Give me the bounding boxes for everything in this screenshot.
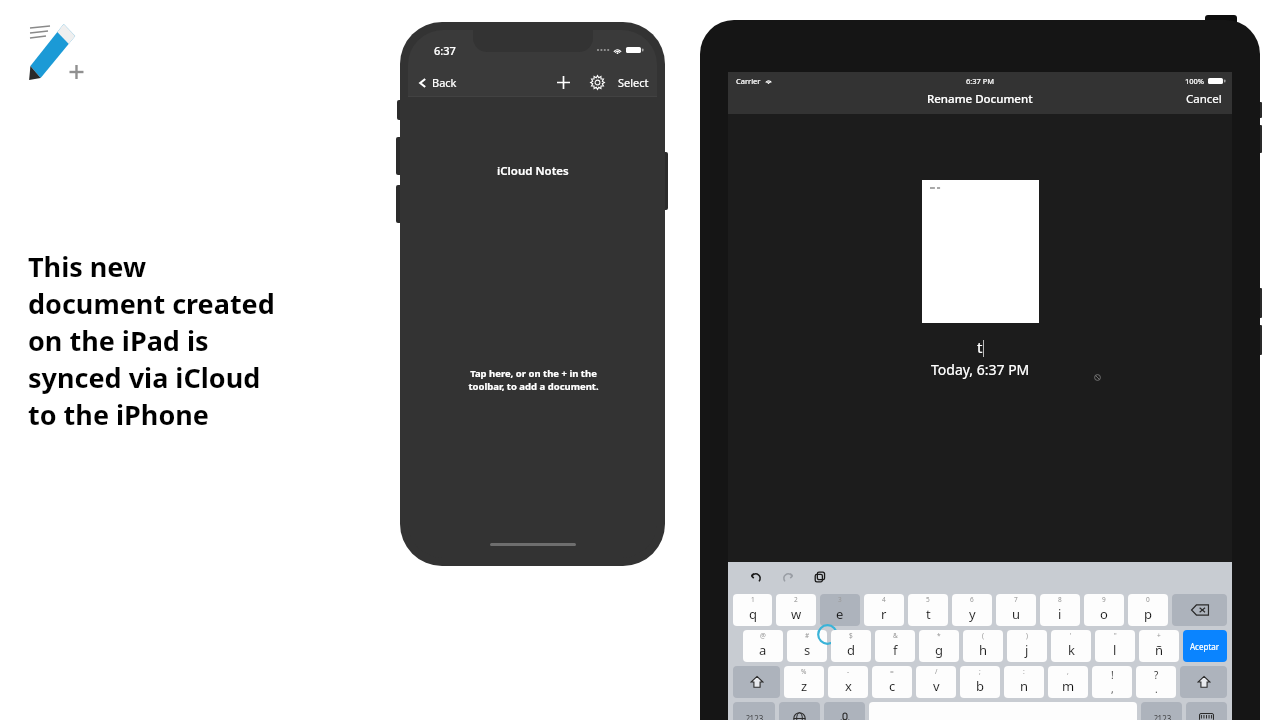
staticText: .?123 bbox=[1152, 713, 1172, 720]
staticText: u bbox=[1012, 605, 1021, 623]
button[interactable] bbox=[1186, 702, 1227, 720]
staticText: % bbox=[801, 667, 807, 676]
button[interactable]: 9 bbox=[1084, 594, 1124, 626]
button[interactable]: $ bbox=[831, 630, 871, 662]
button[interactable]: ' bbox=[1051, 630, 1091, 662]
staticText: z bbox=[801, 677, 808, 695]
staticText: 7 bbox=[1014, 595, 1018, 604]
staticText: ñ bbox=[1155, 641, 1164, 659]
staticText: 4 bbox=[882, 595, 886, 604]
button[interactable]: 4 bbox=[864, 594, 904, 626]
button[interactable]: ; bbox=[960, 666, 1000, 698]
button[interactable]: ! bbox=[1092, 666, 1132, 698]
button[interactable]: 6 bbox=[952, 594, 992, 626]
staticText: , bbox=[1067, 667, 1069, 676]
staticText: 9 bbox=[1102, 595, 1106, 604]
staticText: 1 bbox=[751, 595, 755, 604]
button[interactable]: " bbox=[1095, 630, 1135, 662]
staticText: @ bbox=[760, 631, 766, 640]
button[interactable]: Settings bbox=[586, 71, 608, 93]
button[interactable] bbox=[824, 702, 865, 720]
button[interactable]: , bbox=[1048, 666, 1088, 698]
staticText: Carrier bbox=[736, 76, 761, 86]
staticText: 100% bbox=[1185, 76, 1205, 86]
button[interactable]: & bbox=[875, 630, 915, 662]
staticText: q bbox=[749, 605, 757, 623]
staticText: b bbox=[976, 677, 984, 695]
staticText: to the iPhone bbox=[28, 396, 209, 433]
button[interactable]: : bbox=[1004, 666, 1044, 698]
staticText: w bbox=[791, 605, 802, 623]
button[interactable]: ( bbox=[963, 630, 1003, 662]
staticText: 8 bbox=[1058, 595, 1062, 604]
staticText: Tap here, or on the + in the bbox=[470, 367, 597, 380]
button[interactable]: Back bbox=[418, 75, 457, 90]
staticText: n bbox=[1020, 677, 1029, 695]
button[interactable]: 0 bbox=[1128, 594, 1168, 626]
staticText: v bbox=[933, 677, 940, 695]
staticText: / bbox=[935, 667, 938, 676]
button[interactable]: .?123 bbox=[1141, 702, 1182, 720]
staticText: ' bbox=[1070, 631, 1072, 640]
staticText: l bbox=[1113, 641, 1117, 659]
button[interactable]: 5 bbox=[908, 594, 948, 626]
staticText: c bbox=[889, 677, 896, 695]
staticText: g bbox=[935, 641, 943, 659]
staticText: , bbox=[1111, 682, 1114, 696]
button[interactable]: % bbox=[784, 666, 824, 698]
staticText: 6:37 bbox=[434, 43, 456, 58]
staticText: = bbox=[890, 667, 894, 676]
staticText: Rename Document bbox=[927, 91, 1033, 107]
staticText: f bbox=[893, 641, 898, 659]
button[interactable] bbox=[733, 666, 780, 698]
button[interactable]: ? bbox=[1136, 666, 1176, 698]
staticText: on the iPad is bbox=[28, 322, 209, 359]
button[interactable]: Tap here, or on the + in the bbox=[443, 367, 623, 393]
button[interactable]: 7 bbox=[996, 594, 1036, 626]
staticText: t bbox=[926, 605, 931, 623]
button[interactable]: - bbox=[828, 666, 868, 698]
staticText: + bbox=[1157, 631, 1161, 640]
button[interactable] bbox=[1180, 666, 1227, 698]
button[interactable] bbox=[779, 702, 820, 720]
staticText: ! bbox=[1111, 668, 1114, 682]
button[interactable] bbox=[1172, 594, 1227, 626]
staticText: e bbox=[836, 605, 844, 623]
button[interactable]: 8 bbox=[1040, 594, 1080, 626]
staticText: h bbox=[979, 641, 988, 659]
staticText: 0 bbox=[1146, 595, 1150, 604]
button[interactable]: # bbox=[787, 630, 827, 662]
button[interactable]: Undo bbox=[745, 566, 767, 588]
staticText: This new bbox=[28, 248, 147, 285]
button[interactable]: 1 bbox=[733, 594, 772, 626]
staticText: # bbox=[805, 631, 810, 640]
staticText: $ bbox=[849, 631, 853, 640]
button[interactable]: 2 bbox=[776, 594, 816, 626]
staticText: k bbox=[1068, 641, 1075, 659]
button[interactable]: Redo bbox=[777, 566, 799, 588]
button[interactable]: Select bbox=[618, 75, 649, 90]
button[interactable]: Cancel bbox=[1186, 91, 1222, 107]
staticText: ) bbox=[1026, 631, 1028, 640]
staticText: d bbox=[847, 641, 855, 659]
button[interactable]: 3 bbox=[820, 594, 860, 626]
button[interactable]: + bbox=[1139, 630, 1179, 662]
button[interactable]: Add document bbox=[552, 71, 574, 93]
button[interactable]: = bbox=[872, 666, 912, 698]
staticText: 6 bbox=[970, 595, 974, 604]
button[interactable]: Paste bbox=[809, 566, 831, 588]
button[interactable]: @ bbox=[743, 630, 783, 662]
staticText: o bbox=[1100, 605, 1108, 623]
staticText: ; bbox=[979, 667, 981, 676]
staticText: ? bbox=[1154, 668, 1159, 682]
button[interactable]: ) bbox=[1007, 630, 1047, 662]
button[interactable]: .?123 bbox=[733, 702, 775, 720]
button[interactable]: * bbox=[919, 630, 959, 662]
staticText: .?123 bbox=[744, 713, 764, 720]
staticText: 2 bbox=[794, 595, 798, 604]
button[interactable]: Aceptar bbox=[1183, 630, 1227, 662]
button[interactable]: / bbox=[916, 666, 956, 698]
staticText: iCloud Notes bbox=[497, 163, 569, 179]
